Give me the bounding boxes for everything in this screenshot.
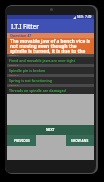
button[interactable]: Option A: xyxy=(7,54,94,64)
button[interactable]: I.T.I Fitter xyxy=(7,19,94,33)
staticText: I.T.I Fitter xyxy=(11,22,39,30)
button[interactable]: SHOW ANS xyxy=(66,135,94,146)
staticText: Spindle pin is broken xyxy=(9,68,46,73)
button[interactable]: NEXT xyxy=(7,125,94,135)
staticText: Option A: xyxy=(9,54,19,57)
staticText: Threads on spindle are damaged xyxy=(9,88,66,93)
staticText: NEXT xyxy=(46,128,55,132)
button[interactable]: Option D: xyxy=(7,84,94,94)
staticText: 56% xyxy=(77,15,84,19)
staticText: Option B: xyxy=(9,64,19,67)
staticText: SHOW ANS xyxy=(71,139,89,143)
button[interactable]: Option C: xyxy=(7,74,94,84)
staticText: The movable jaw of a bench vice is not m… xyxy=(10,38,91,54)
staticText: PREVIOUS xyxy=(14,139,30,143)
staticText: Fixed and movable jaws are over tight xyxy=(9,58,76,63)
staticText: Option D: xyxy=(9,84,19,87)
staticText: Question 47 xyxy=(10,33,32,38)
button[interactable]: Option B: xyxy=(7,64,94,74)
staticText: Spring is not functioning xyxy=(9,78,53,83)
staticText: Option C: xyxy=(9,74,19,77)
staticText: 7:39 xyxy=(85,15,92,19)
button[interactable]: PREVIOUS xyxy=(7,135,36,146)
